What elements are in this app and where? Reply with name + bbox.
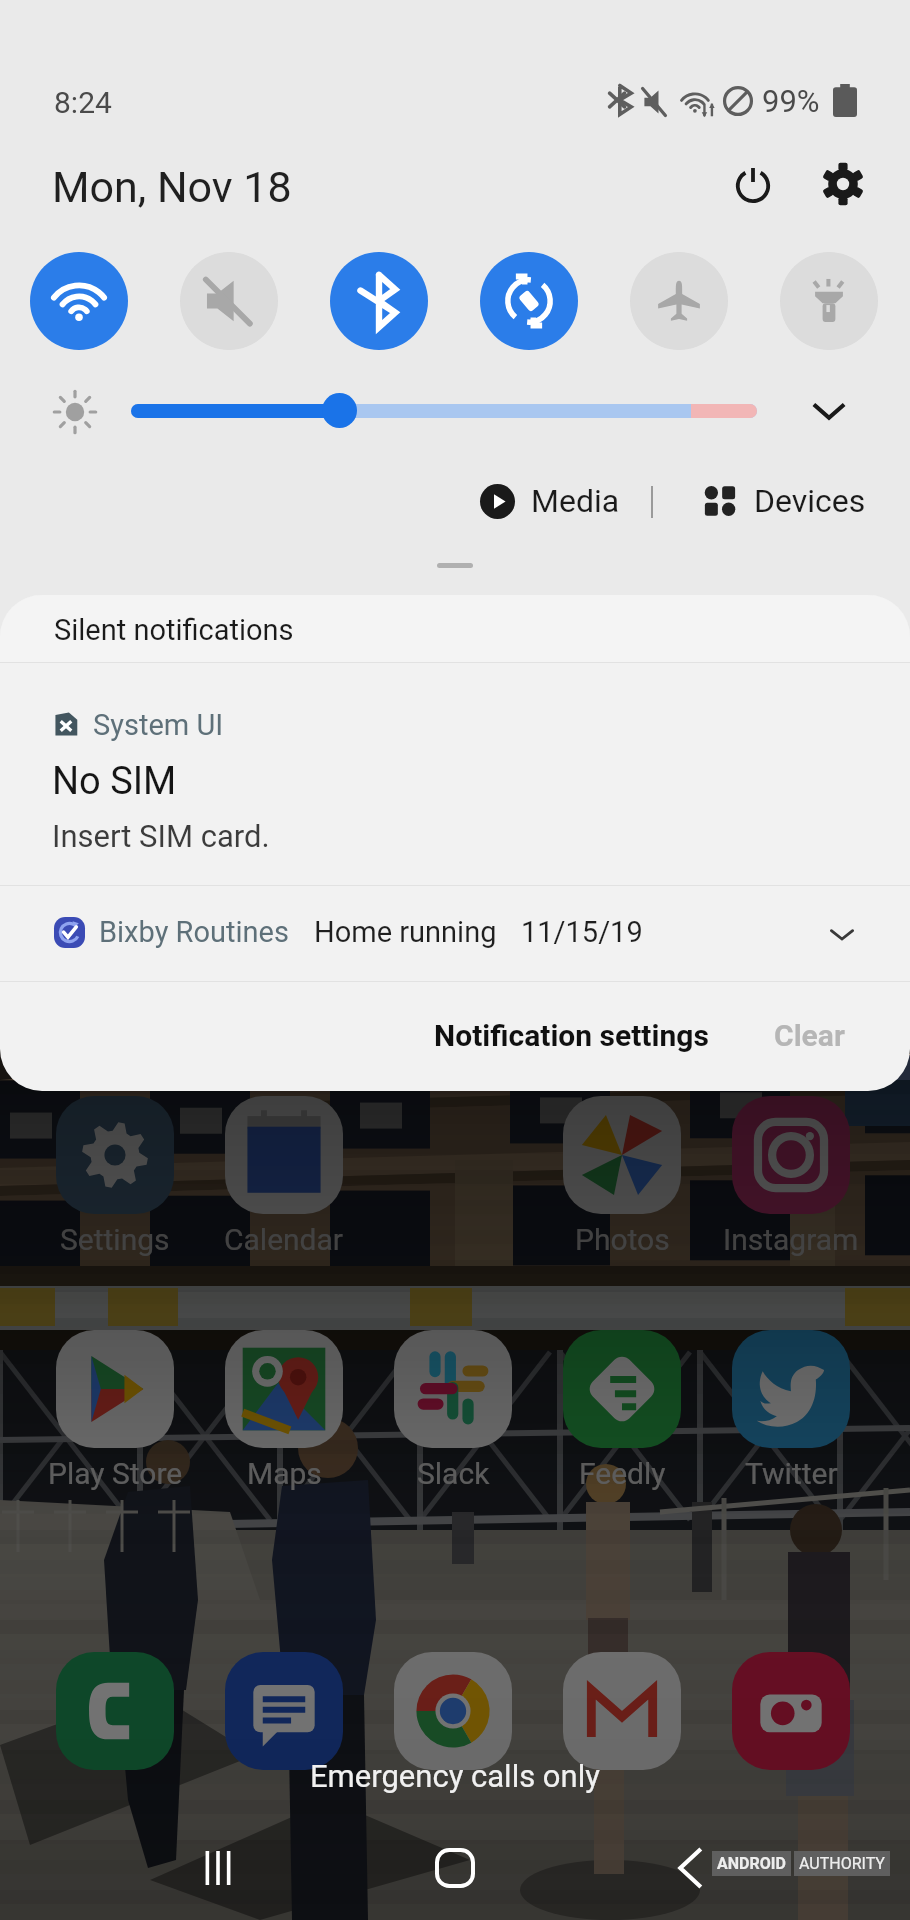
staticText: Slack xyxy=(417,1456,490,1491)
staticText: Bixby Routines xyxy=(99,915,289,949)
staticText: 11/15/19 xyxy=(521,915,643,949)
button[interactable]: Photos xyxy=(563,1096,681,1214)
staticText: AUTHORITY xyxy=(799,1854,885,1873)
staticText: Home running xyxy=(314,915,497,949)
button[interactable]: Back xyxy=(651,1828,731,1908)
staticText: Silent notifications xyxy=(54,613,294,647)
button[interactable]: Expand xyxy=(799,381,859,441)
staticText: 8:24 xyxy=(54,85,112,120)
button[interactable]: Bluetooth xyxy=(330,252,428,350)
button[interactable]: Bixby Routines xyxy=(0,886,910,981)
staticText: 99% xyxy=(762,83,820,119)
staticText: Clear xyxy=(774,1018,845,1053)
staticText: Devices xyxy=(754,482,866,520)
button[interactable]: App xyxy=(394,1652,512,1770)
staticText: Mon, Nov 18 xyxy=(52,162,292,212)
staticText: Insert SIM card. xyxy=(52,818,270,854)
button[interactable]: Maps xyxy=(225,1330,343,1448)
button[interactable]: Twitter xyxy=(732,1330,850,1448)
button[interactable]: Sound xyxy=(180,252,278,350)
button[interactable]: Settings xyxy=(56,1096,174,1214)
button[interactable]: Feedly xyxy=(563,1330,681,1448)
staticText: Maps xyxy=(247,1456,322,1491)
button[interactable]: App xyxy=(563,1652,681,1770)
button[interactable]: Calendar xyxy=(225,1096,343,1214)
button[interactable]: Instagram xyxy=(732,1096,850,1214)
button[interactable]: Media xyxy=(480,482,620,520)
button[interactable]: Airplane mode xyxy=(630,252,728,350)
staticText: No SIM xyxy=(52,759,177,804)
staticText: System UI xyxy=(93,708,224,742)
staticText: Settings xyxy=(60,1222,170,1257)
button[interactable]: Power xyxy=(723,154,783,214)
staticText: ANDROID xyxy=(717,1854,786,1873)
button[interactable]: Slack xyxy=(394,1330,512,1448)
button[interactable]: Clear xyxy=(750,1006,869,1065)
button[interactable]: Expand notification xyxy=(816,908,868,960)
staticText: Notification settings xyxy=(434,1018,709,1053)
button[interactable]: App xyxy=(225,1652,343,1770)
staticText: Twitter xyxy=(745,1456,838,1491)
staticText: Play Store xyxy=(48,1456,183,1491)
button[interactable]: App xyxy=(732,1652,850,1770)
staticText: Media xyxy=(531,482,620,520)
button[interactable]: Settings xyxy=(813,154,873,214)
button[interactable]: Devices xyxy=(702,482,866,520)
button[interactable]: Recents xyxy=(178,1828,258,1908)
button[interactable]: System UI xyxy=(0,663,910,885)
staticText: Photos xyxy=(575,1222,670,1257)
button[interactable]: Brightness xyxy=(322,393,357,428)
staticText: Calendar xyxy=(224,1222,344,1257)
button[interactable]: Auto rotate xyxy=(480,252,578,350)
button[interactable]: App xyxy=(56,1652,174,1770)
button[interactable]: Wi-Fi xyxy=(30,252,128,350)
staticText: Instagram xyxy=(723,1222,859,1257)
button[interactable]: Notification settings xyxy=(410,1006,733,1065)
button[interactable]: Flashlight xyxy=(780,252,878,350)
staticText: Feedly xyxy=(579,1456,666,1491)
staticText: Emergency calls only xyxy=(310,1758,600,1794)
button[interactable]: Play Store xyxy=(56,1330,174,1448)
button[interactable]: Home xyxy=(415,1828,495,1908)
